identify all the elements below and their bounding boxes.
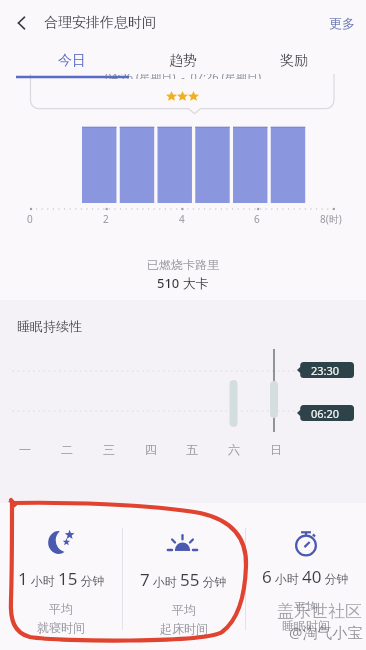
staticText: 睡眠持续性 (17, 318, 82, 334)
staticText: 7 小时 55 分钟 (140, 568, 227, 591)
staticText: 06:20 (311, 406, 340, 421)
staticText: 平均 (294, 599, 318, 614)
staticText: 平均 (49, 601, 73, 616)
staticText: 二 (61, 442, 73, 457)
staticText: 一 (19, 442, 31, 457)
staticText: 睡眠时间 (282, 618, 330, 633)
staticText: 就寝时间 (37, 620, 85, 635)
staticText: 合理安排作息时间 (44, 14, 156, 32)
staticText: 平均 (172, 602, 196, 617)
button[interactable]: Back (0, 0, 44, 45)
staticText: 510 大卡 (157, 274, 209, 292)
staticText: 今日 (58, 52, 86, 70)
staticText: 6 小时 40 分钟 (262, 565, 349, 588)
staticText: 6 (254, 212, 260, 226)
staticText: 4 (179, 212, 185, 226)
staticText: 日 (270, 442, 282, 457)
staticText: 8(时) (320, 212, 342, 226)
staticText: 四 (145, 442, 157, 457)
button[interactable]: 更多 (315, 3, 366, 43)
staticText: 23:30 (311, 363, 340, 378)
staticText: 1 小时 15 分钟 (18, 567, 105, 590)
staticText: 04:26 (星期日) - 07:26 (星期日) (0, 74, 366, 79)
staticText: 盖乐世社区 (277, 601, 362, 622)
button[interactable]: 趋势 (127, 46, 239, 76)
staticText: 趋势 (169, 52, 197, 70)
staticText: 已燃烧卡路里 (147, 257, 219, 272)
button[interactable]: 1 小时 15 分钟 (0, 512, 122, 650)
staticText: 奖励 (280, 52, 308, 70)
button[interactable]: 6 小时 40 分钟 (245, 512, 366, 650)
staticText: 起床时间 (160, 621, 208, 636)
staticText: 六 (228, 442, 240, 457)
button[interactable]: 奖励 (239, 46, 349, 76)
staticText: 三 (103, 442, 115, 457)
staticText: 2 (103, 212, 109, 226)
staticText: 五 (186, 442, 198, 457)
button[interactable]: 今日 (16, 46, 127, 76)
staticText: 更多 (329, 15, 355, 31)
staticText: @淘气小宝 (289, 622, 363, 642)
button[interactable]: 7 小时 55 分钟 (122, 512, 245, 650)
staticText: 0 (27, 212, 33, 226)
